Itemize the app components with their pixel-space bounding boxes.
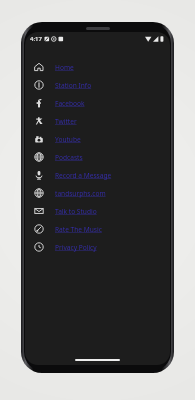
staticText: Home [55, 63, 74, 72]
staticText: Talk to Studio [55, 207, 97, 216]
staticText: 4:17 [30, 35, 42, 43]
button[interactable]: Facebook [25, 94, 170, 112]
staticText: Youtube [55, 135, 81, 144]
button[interactable]: Podcasts [25, 148, 170, 166]
button[interactable]: Talk to Studio [25, 202, 170, 220]
staticText: Privacy Policy [55, 243, 97, 252]
button[interactable]: Rate The Music [25, 220, 170, 238]
button[interactable]: Station Info [25, 76, 170, 94]
staticText: tandsurphs.com [55, 189, 106, 198]
staticText: Twitter [55, 117, 77, 126]
button[interactable]: Home [25, 58, 170, 76]
button[interactable]: tandsurphs.com [25, 184, 170, 202]
button[interactable]: Youtube [25, 130, 170, 148]
staticText: Station Info [55, 81, 92, 90]
button[interactable]: Privacy Policy [25, 238, 170, 256]
button[interactable]: Record a Message [25, 166, 170, 184]
staticText: Rate The Music [55, 225, 102, 234]
staticText: Podcasts [55, 153, 83, 162]
button[interactable]: Twitter [25, 112, 170, 130]
staticText: Facebook [55, 99, 85, 108]
staticText: Record a Message [55, 171, 112, 180]
